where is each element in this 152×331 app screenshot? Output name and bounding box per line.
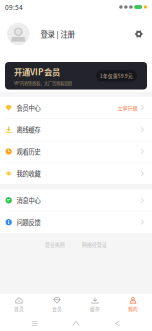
button[interactable]: 消息中心 bbox=[0, 190, 152, 211]
button[interactable]: 缓存 bbox=[76, 293, 114, 316]
staticText: 开通VIP会员 bbox=[14, 66, 60, 78]
staticText: 我的 bbox=[128, 305, 138, 312]
staticText: 网络经营证 bbox=[82, 241, 107, 248]
staticText: 会员 bbox=[52, 305, 62, 312]
button[interactable]: 我的收藏 bbox=[0, 163, 152, 184]
staticText: 首页 bbox=[14, 305, 24, 312]
staticText: 立享升级 bbox=[118, 104, 138, 111]
staticText: 登录 | 注册 bbox=[40, 29, 74, 39]
button[interactable]: 会员 bbox=[38, 293, 76, 316]
button[interactable]: 网络经营证 bbox=[82, 241, 107, 248]
staticText: 1年仅需59.9元 bbox=[100, 72, 133, 79]
staticText: 营业执照 bbox=[45, 241, 65, 248]
button[interactable]: 最近任务 bbox=[27, 318, 41, 328]
staticText: 09:54 bbox=[5, 2, 23, 12]
staticText: 离线缓存 bbox=[16, 125, 40, 134]
staticText: 问题反馈 bbox=[16, 218, 40, 227]
button[interactable]: 问题反馈 bbox=[0, 211, 152, 233]
staticText: 会员中心 bbox=[16, 103, 40, 112]
button[interactable]: 首页 bbox=[0, 293, 38, 316]
button[interactable]: 离线缓存 bbox=[0, 119, 152, 140]
button[interactable]: 登录 | 注册 bbox=[7, 23, 74, 45]
button[interactable]: 开通VIP会员 bbox=[5, 62, 147, 89]
staticText: 消息中心 bbox=[16, 196, 40, 205]
button[interactable]: 主页 bbox=[69, 318, 83, 328]
button[interactable]: 设置 bbox=[135, 30, 143, 38]
staticText: VIP内容免费看，无广告观看追剧 bbox=[14, 80, 72, 86]
button[interactable]: 观看历史 bbox=[0, 141, 152, 162]
staticText: 缓存 bbox=[90, 305, 100, 312]
button[interactable]: 营业执照 bbox=[45, 241, 65, 248]
button[interactable]: 会员中心 bbox=[0, 97, 152, 118]
staticText: 我的收藏 bbox=[16, 169, 40, 178]
button[interactable]: 我的 bbox=[114, 293, 152, 316]
button[interactable]: 返回 bbox=[110, 318, 124, 328]
staticText: 观看历史 bbox=[16, 147, 40, 156]
